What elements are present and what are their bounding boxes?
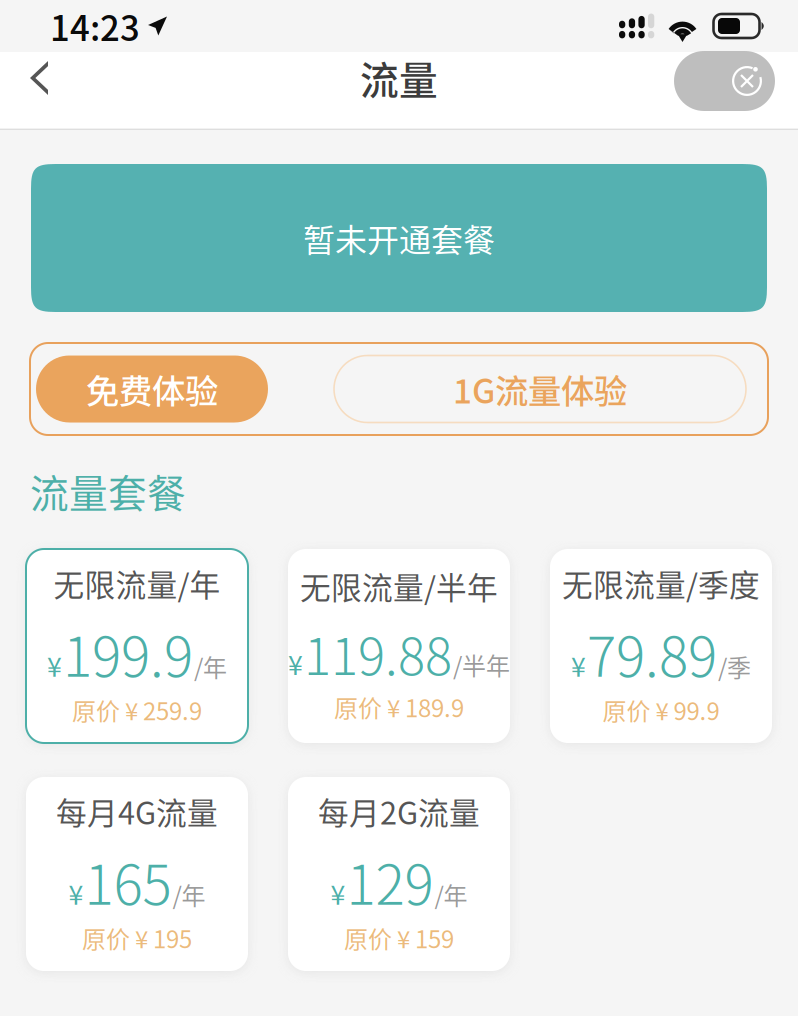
staticText: 免费体验 bbox=[86, 365, 218, 413]
staticText: /年 bbox=[172, 877, 205, 912]
staticText: ¥ bbox=[330, 874, 345, 912]
staticText: 79.89 bbox=[587, 613, 717, 692]
staticText: 流量 bbox=[360, 50, 438, 106]
staticText: 原价 ¥ 189.9 bbox=[334, 689, 464, 724]
staticText: 无限流量/年 bbox=[53, 561, 220, 605]
staticText: 199.9 bbox=[63, 613, 193, 692]
staticText: ¥ bbox=[68, 874, 83, 912]
staticText: ¥ bbox=[571, 646, 586, 684]
staticText: 原价 ¥ 259.9 bbox=[72, 692, 202, 727]
button[interactable]: 免费体验 bbox=[36, 355, 268, 422]
button[interactable]: 无限流量/半年 bbox=[288, 549, 510, 743]
staticText: 流量套餐 bbox=[30, 463, 186, 519]
staticText: /年 bbox=[194, 649, 227, 684]
staticText: 每月4G流量 bbox=[56, 789, 218, 833]
staticText: 无限流量/季度 bbox=[562, 561, 760, 605]
staticText: 14:23 bbox=[50, 1, 140, 51]
staticText: 原价 ¥ 195 bbox=[82, 920, 192, 955]
button[interactable]: 1G流量体验 bbox=[334, 355, 746, 422]
staticText: 无限流量/半年 bbox=[300, 564, 498, 608]
staticText: /年 bbox=[434, 877, 467, 912]
button[interactable]: 每月2G流量 bbox=[288, 777, 510, 971]
staticText: ¥ bbox=[288, 644, 303, 683]
staticText: 原价 ¥ 159 bbox=[344, 920, 454, 955]
button[interactable]: 无限流量/季度 bbox=[550, 549, 772, 743]
button[interactable]: Close mini program bbox=[674, 48, 775, 108]
staticText: ¥ bbox=[47, 646, 62, 684]
button[interactable]: Back bbox=[9, 41, 69, 115]
staticText: 1G流量体验 bbox=[453, 365, 627, 413]
staticText: 129 bbox=[346, 841, 433, 920]
staticText: /季 bbox=[718, 649, 751, 684]
staticText: 119.88 bbox=[304, 616, 452, 689]
staticText: 每月2G流量 bbox=[318, 789, 480, 833]
staticText: 暂未开通套餐 bbox=[303, 215, 495, 261]
button[interactable]: 无限流量/年 bbox=[26, 549, 248, 743]
staticText: /半年 bbox=[453, 647, 510, 682]
button[interactable]: 每月4G流量 bbox=[26, 777, 248, 971]
staticText: 165 bbox=[84, 841, 171, 920]
staticText: 原价 ¥ 99.9 bbox=[602, 692, 719, 727]
